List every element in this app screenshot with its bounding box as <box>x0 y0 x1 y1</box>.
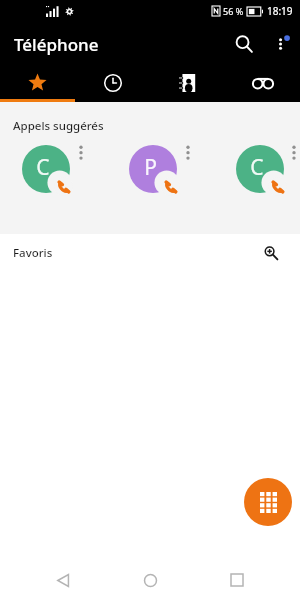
button[interactable]: Messagerie vocale <box>225 66 300 99</box>
button[interactable]: Contacts <box>150 66 225 99</box>
button[interactable]: Clavier <box>244 478 292 526</box>
staticText: 18:19 <box>267 4 293 18</box>
button[interactable]: Appeler P <box>129 145 177 193</box>
button[interactable]: Options du contact <box>180 145 196 171</box>
button[interactable]: Appeler C <box>22 145 70 193</box>
staticText: 56 % <box>223 5 244 17</box>
staticText: C <box>36 153 50 182</box>
button[interactable]: Rechercher <box>224 24 264 64</box>
staticText: P <box>144 153 157 182</box>
button[interactable]: Options du contact <box>287 145 300 171</box>
staticText: Favoris <box>13 245 53 261</box>
button[interactable]: Récents <box>75 66 150 99</box>
button[interactable]: Retour <box>39 560 87 600</box>
button[interactable]: Appeler C <box>236 145 284 193</box>
button[interactable]: Agrandir <box>258 240 284 266</box>
button[interactable]: Favoris <box>0 66 75 99</box>
staticText: C <box>250 153 264 182</box>
button[interactable]: Applications récentes <box>213 560 261 600</box>
staticText: Téléphone <box>14 33 99 56</box>
button[interactable]: Accueil <box>126 560 174 600</box>
button[interactable]: Options du contact <box>73 145 89 171</box>
staticText: Appels suggérés <box>13 118 104 134</box>
button[interactable]: Plus d'options <box>264 26 300 62</box>
